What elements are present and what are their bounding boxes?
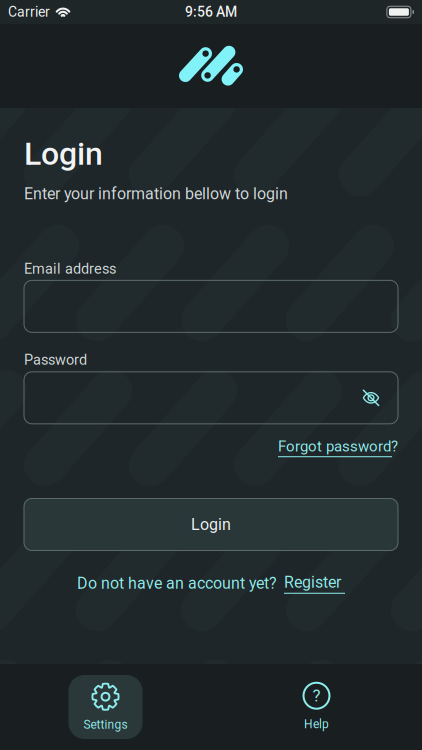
staticText: Forgot password? (278, 438, 398, 455)
staticText: Email address (24, 260, 116, 277)
staticText: Carrier (8, 4, 50, 20)
staticText: Login (191, 515, 231, 534)
staticText: Register (284, 573, 341, 592)
staticText: Help (304, 717, 329, 731)
staticText: ? (312, 686, 320, 706)
button[interactable]: ? (279, 675, 353, 739)
staticText: Login (24, 135, 103, 172)
staticText: Enter your information bellow to login (24, 184, 288, 203)
button[interactable]: Forgot password? (278, 433, 398, 462)
staticText: Settings (83, 718, 127, 732)
button[interactable]: Settings (68, 675, 142, 739)
button[interactable]: Register (284, 573, 345, 594)
staticText: Password (24, 351, 87, 368)
button[interactable]: Login (24, 498, 398, 550)
button[interactable]: Show password (344, 373, 398, 423)
staticText: Do not have an account yet? (77, 574, 277, 593)
staticText: 9:56 AM (185, 4, 237, 20)
